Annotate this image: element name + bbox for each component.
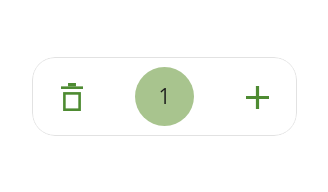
button[interactable]: Add (235, 75, 279, 119)
button[interactable]: Delete (50, 75, 94, 119)
staticText: 1 (158, 82, 171, 111)
button[interactable]: 1 (135, 67, 194, 126)
